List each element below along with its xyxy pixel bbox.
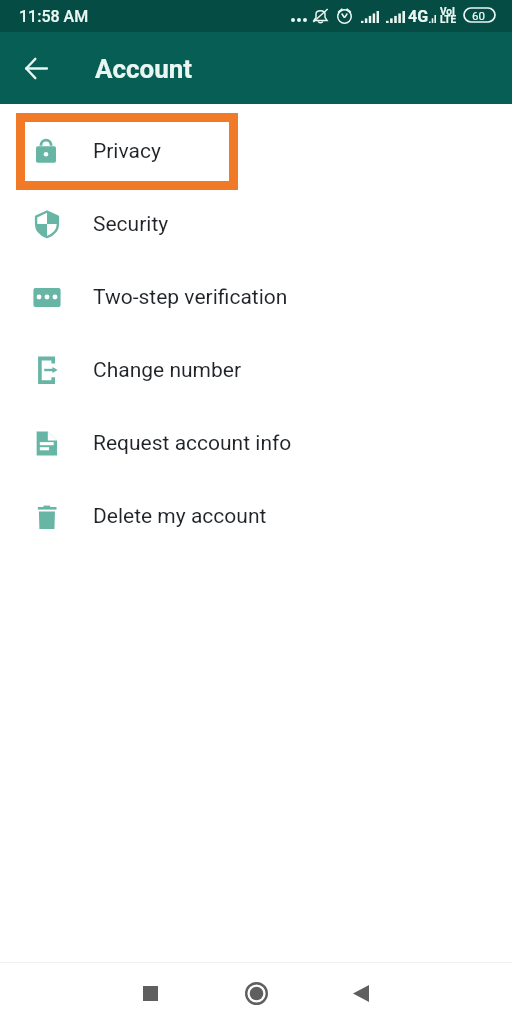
button[interactable]: Security [0, 187, 512, 260]
button[interactable]: Delete my account [0, 479, 512, 552]
staticText: 60 [472, 9, 485, 22]
button[interactable]: Back [14, 46, 58, 90]
staticText: Two-step verification [93, 285, 288, 310]
staticText: VoI [440, 6, 455, 18]
staticText: Account [95, 54, 193, 84]
staticText: Change number [93, 358, 242, 383]
button[interactable]: Request account info [0, 406, 512, 479]
staticText: Delete my account [93, 504, 267, 529]
button[interactable]: Two-step verification [0, 260, 512, 333]
staticText: Request account info [93, 431, 292, 456]
button[interactable]: Change number [0, 333, 512, 406]
button[interactable]: Recent apps [122, 965, 178, 1021]
button[interactable]: Home [228, 965, 284, 1021]
button[interactable]: Back [333, 965, 389, 1021]
staticText: 4G [408, 7, 429, 26]
staticText: LTE [440, 14, 457, 26]
staticText: Security [93, 212, 169, 237]
staticText: 11:58 AM [19, 7, 89, 26]
button[interactable]: Privacy [0, 114, 512, 187]
staticText: Privacy [93, 139, 161, 164]
